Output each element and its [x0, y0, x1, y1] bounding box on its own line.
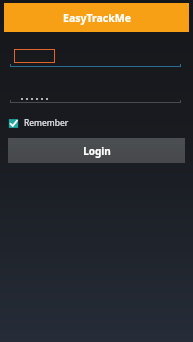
staticText: Login: [83, 144, 111, 158]
button[interactable]: [10, 85, 181, 103]
staticText: EasyTrackMe: [63, 11, 131, 25]
button[interactable]: Remember: [8, 115, 69, 131]
staticText: Remember: [24, 117, 69, 129]
button[interactable]: [10, 49, 181, 67]
button[interactable]: EasyTrackMe: [4, 3, 189, 32]
button[interactable]: Login: [8, 138, 185, 163]
